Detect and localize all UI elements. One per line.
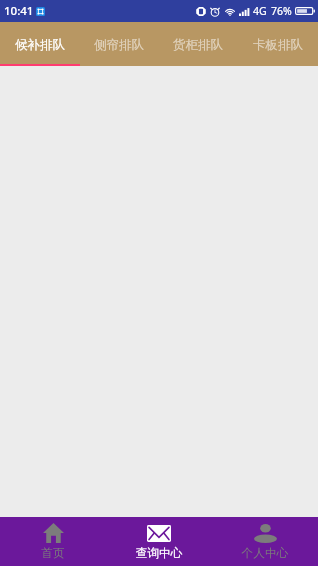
other: Do not disturb: [196, 6, 206, 17]
button[interactable]: 卡板排队: [238, 22, 318, 66]
staticText: 侧帘排队: [94, 37, 144, 53]
staticText: 10:41: [4, 3, 34, 19]
button[interactable]: 查询中心: [106, 517, 212, 566]
staticText: 货柜排队: [173, 37, 223, 53]
staticText: 候补排队: [15, 37, 65, 53]
staticText: 76%: [271, 4, 292, 18]
button[interactable]: 货柜排队: [158, 22, 238, 66]
button[interactable]: 候补排队: [0, 22, 79, 66]
staticText: 4G: [253, 4, 267, 18]
other: Wi-Fi: [224, 6, 236, 17]
other: Mobile signal: [239, 7, 250, 16]
staticText: 个人中心: [241, 546, 289, 561]
staticText: 卡板排队: [253, 37, 303, 53]
other: Alarm set: [210, 6, 220, 17]
staticText: 首页: [41, 546, 65, 561]
staticText: 查询中心: [135, 546, 183, 561]
button[interactable]: 首页: [0, 517, 106, 566]
button[interactable]: 个人中心: [212, 517, 318, 566]
button[interactable]: 侧帘排队: [79, 22, 158, 66]
other: Battery 76 percent: [295, 7, 315, 15]
